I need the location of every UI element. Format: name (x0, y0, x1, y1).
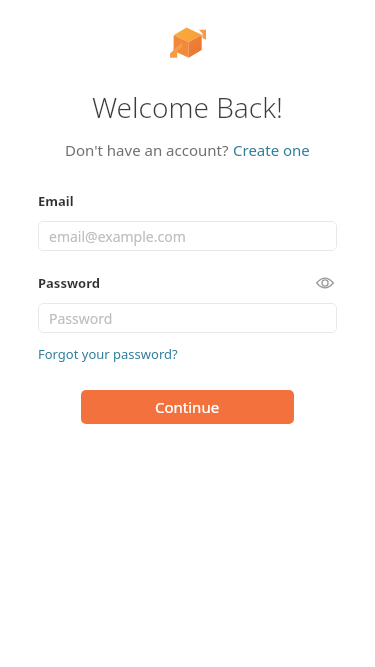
button[interactable]: Create one (233, 140, 310, 160)
button[interactable]: Forgot your password? (38, 345, 178, 363)
staticText: Password (38, 274, 100, 292)
button[interactable]: Show password (313, 271, 337, 295)
button[interactable]: Password (38, 303, 337, 333)
staticText: Forgot your password? (38, 345, 178, 363)
other: App logo (170, 24, 206, 60)
staticText: Create one (233, 140, 310, 160)
staticText: Continue (155, 397, 220, 417)
button[interactable]: email@example.com (38, 221, 337, 251)
staticText: Welcome Back! (92, 88, 283, 126)
staticText: Password (49, 309, 113, 328)
staticText: email@example.com (49, 227, 186, 246)
staticText: Don't have an account? (65, 140, 233, 160)
staticText: Email (38, 192, 74, 210)
button[interactable]: Continue (81, 390, 294, 424)
